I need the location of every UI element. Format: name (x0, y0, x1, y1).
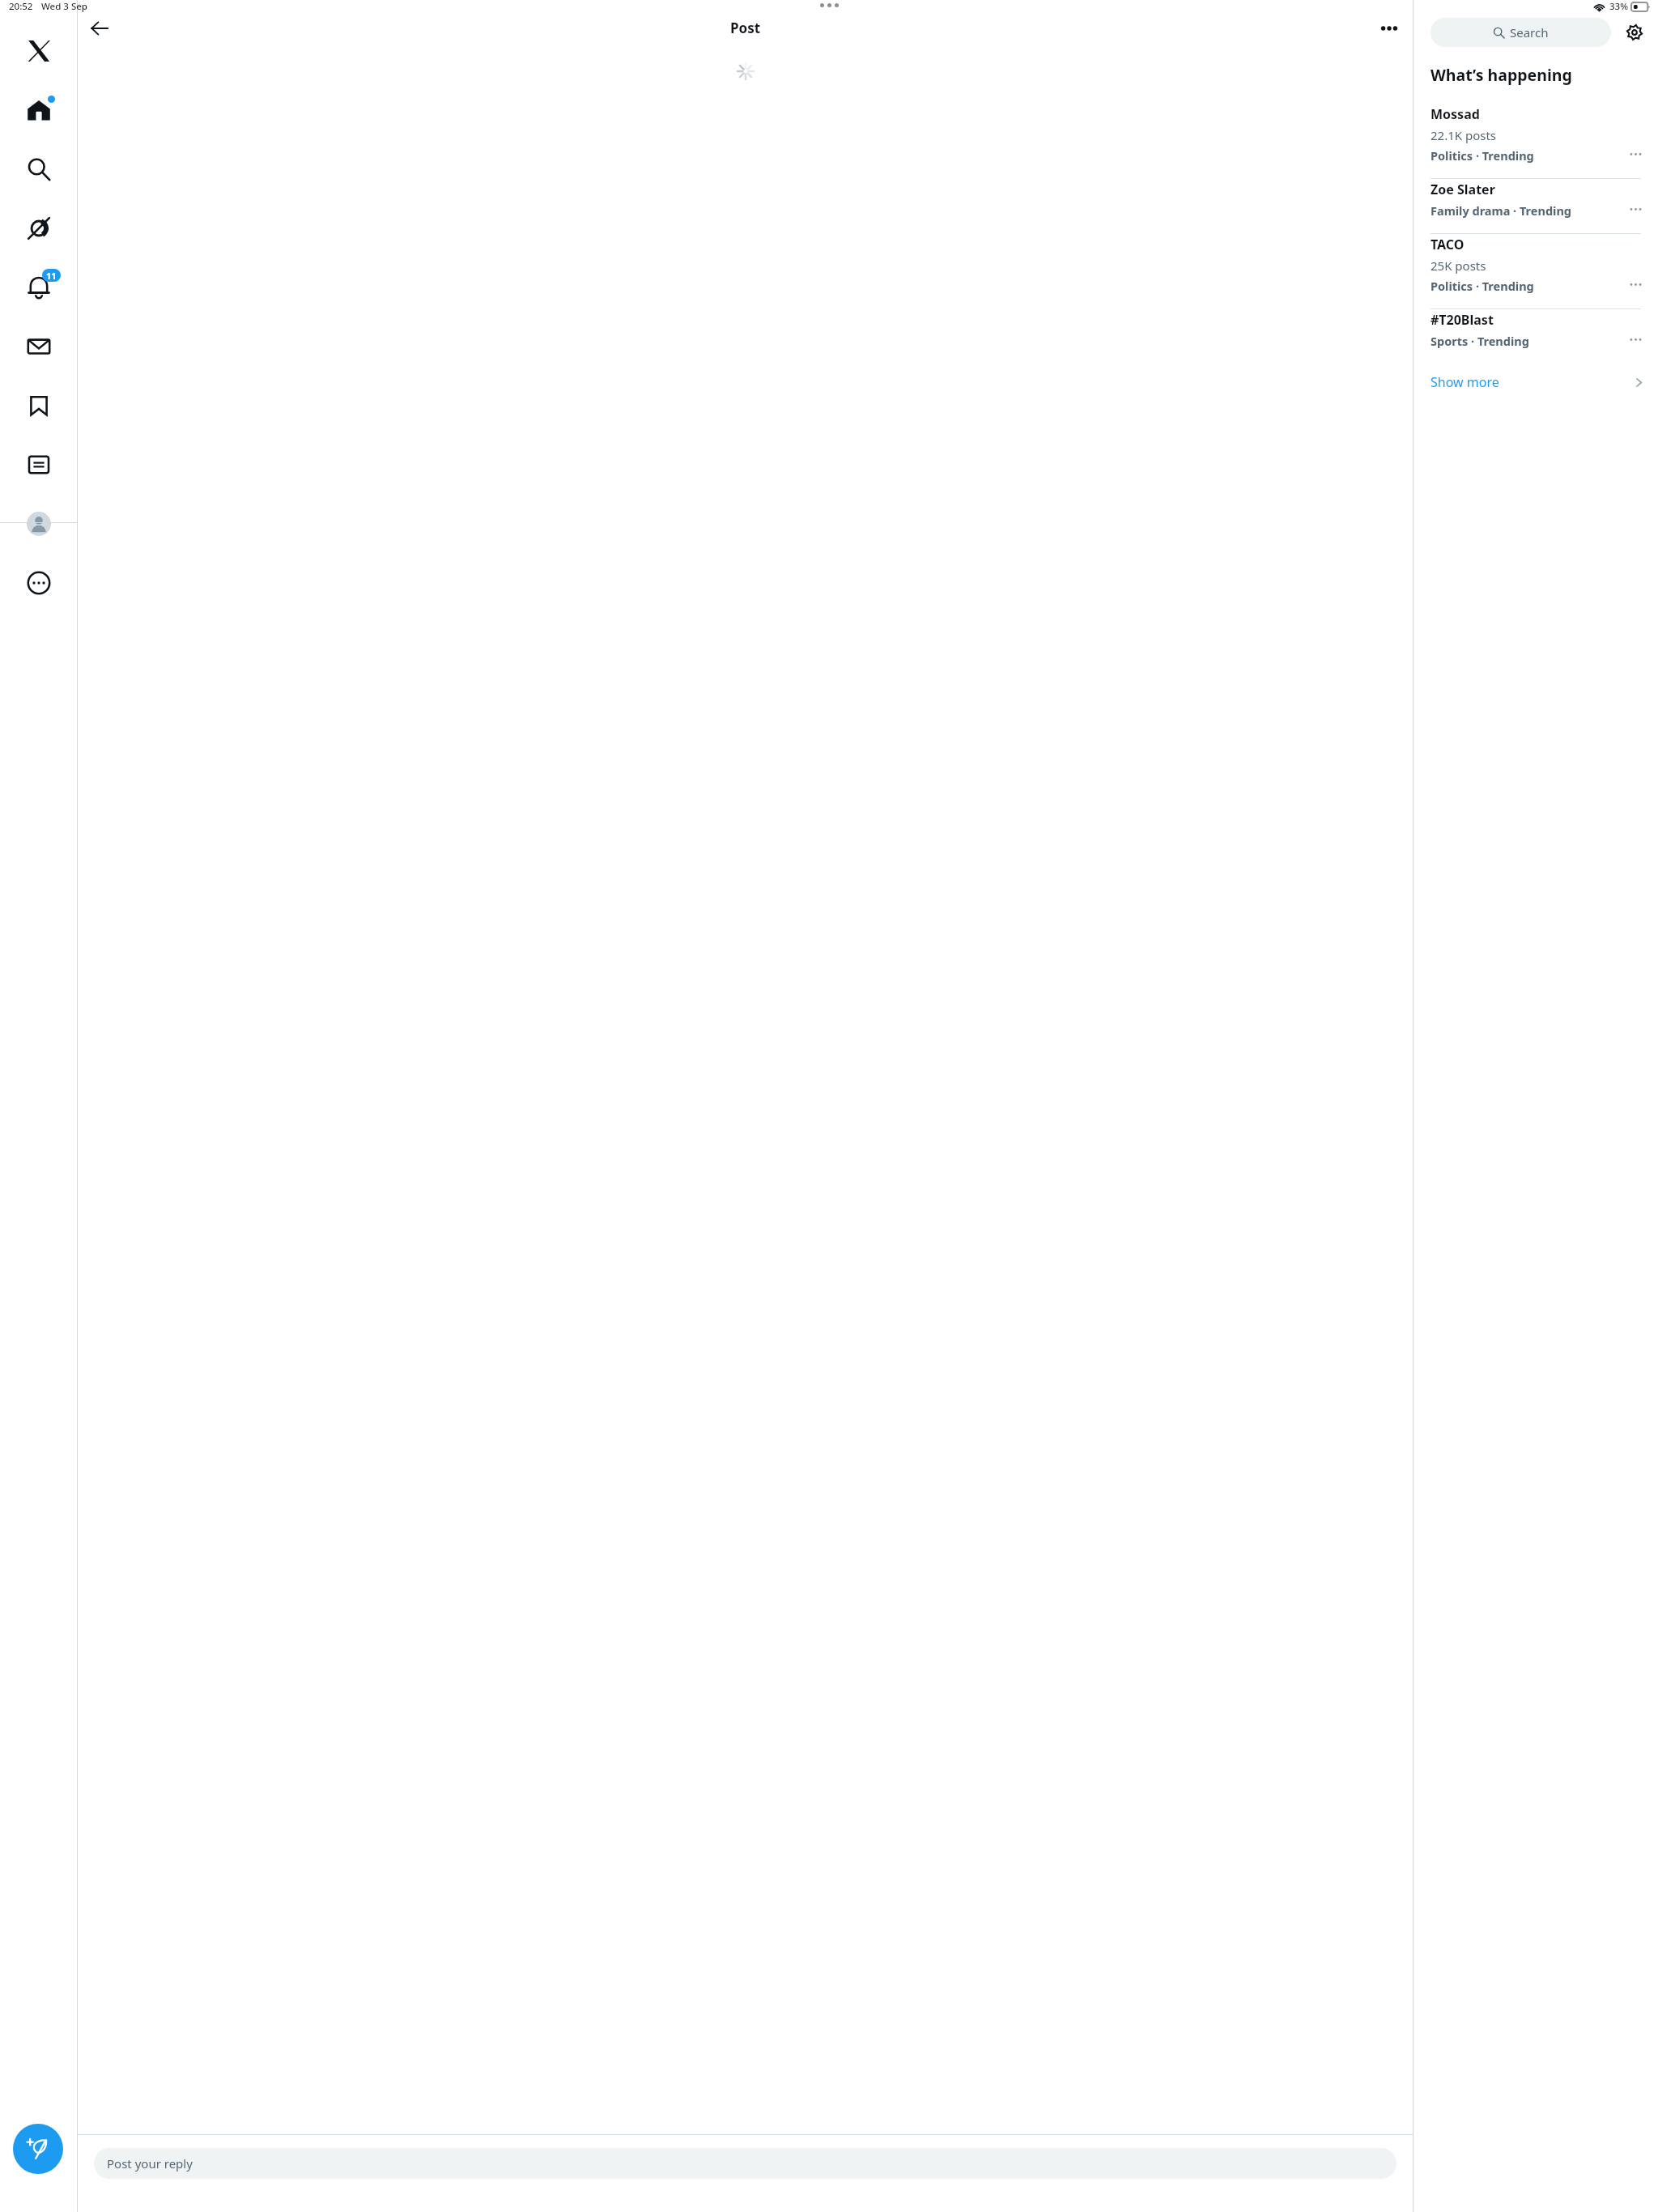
button[interactable]: More (0, 553, 78, 612)
button[interactable]: Trend options (1626, 200, 1644, 218)
button[interactable]: X (0, 21, 78, 80)
staticText: Search (1510, 24, 1549, 40)
button[interactable]: Bookmarks (0, 376, 78, 435)
button[interactable]: Notifications (0, 257, 78, 317)
staticText: Post your reply (107, 2155, 193, 2172)
staticText: Show more (1431, 373, 1499, 391)
button[interactable]: Home (0, 80, 78, 139)
staticText: #T20Blast (1431, 311, 1494, 329)
button[interactable]: Trend options (1626, 145, 1644, 163)
staticText: 25K posts (1431, 257, 1486, 274)
button[interactable]: Trend options (1626, 275, 1644, 293)
staticText: What’s happening (1431, 64, 1572, 86)
button[interactable]: Messages (0, 317, 78, 376)
staticText: Mossad (1431, 105, 1480, 123)
staticText: Post (730, 19, 761, 37)
staticText: 20:52 (9, 0, 33, 13)
staticText: Family drama · Trending (1431, 202, 1571, 219)
button[interactable]: More options (1375, 15, 1403, 42)
staticText: 33% (1609, 0, 1628, 13)
staticText: Zoe Slater (1431, 181, 1495, 198)
button[interactable]: Profile (0, 494, 78, 553)
button[interactable]: Mossad (1414, 104, 1658, 178)
button[interactable]: Lists (0, 435, 78, 494)
staticText: 11 (46, 270, 57, 282)
staticText: 22.1K posts (1431, 127, 1497, 143)
staticText: Wed 3 Sep (41, 0, 87, 13)
staticText: TACO (1431, 236, 1465, 253)
button[interactable]: Trend options (1626, 330, 1644, 348)
button[interactable]: Back (86, 15, 113, 42)
button[interactable]: Zoe Slater (1414, 179, 1658, 233)
button[interactable]: Settings (1622, 20, 1647, 45)
button[interactable]: Post your reply (94, 2148, 1397, 2179)
button[interactable]: Search (0, 139, 78, 198)
button[interactable]: TACO (1414, 234, 1658, 308)
staticText: Sports · Trending (1431, 333, 1529, 349)
staticText: Politics · Trending (1431, 147, 1534, 164)
button[interactable]: Search (1431, 18, 1611, 47)
button[interactable]: #T20Blast (1414, 309, 1658, 364)
button[interactable]: Show more (1414, 364, 1658, 401)
staticText: Politics · Trending (1431, 278, 1534, 294)
button[interactable]: Post (13, 2124, 63, 2174)
button[interactable]: Grok (0, 198, 78, 257)
